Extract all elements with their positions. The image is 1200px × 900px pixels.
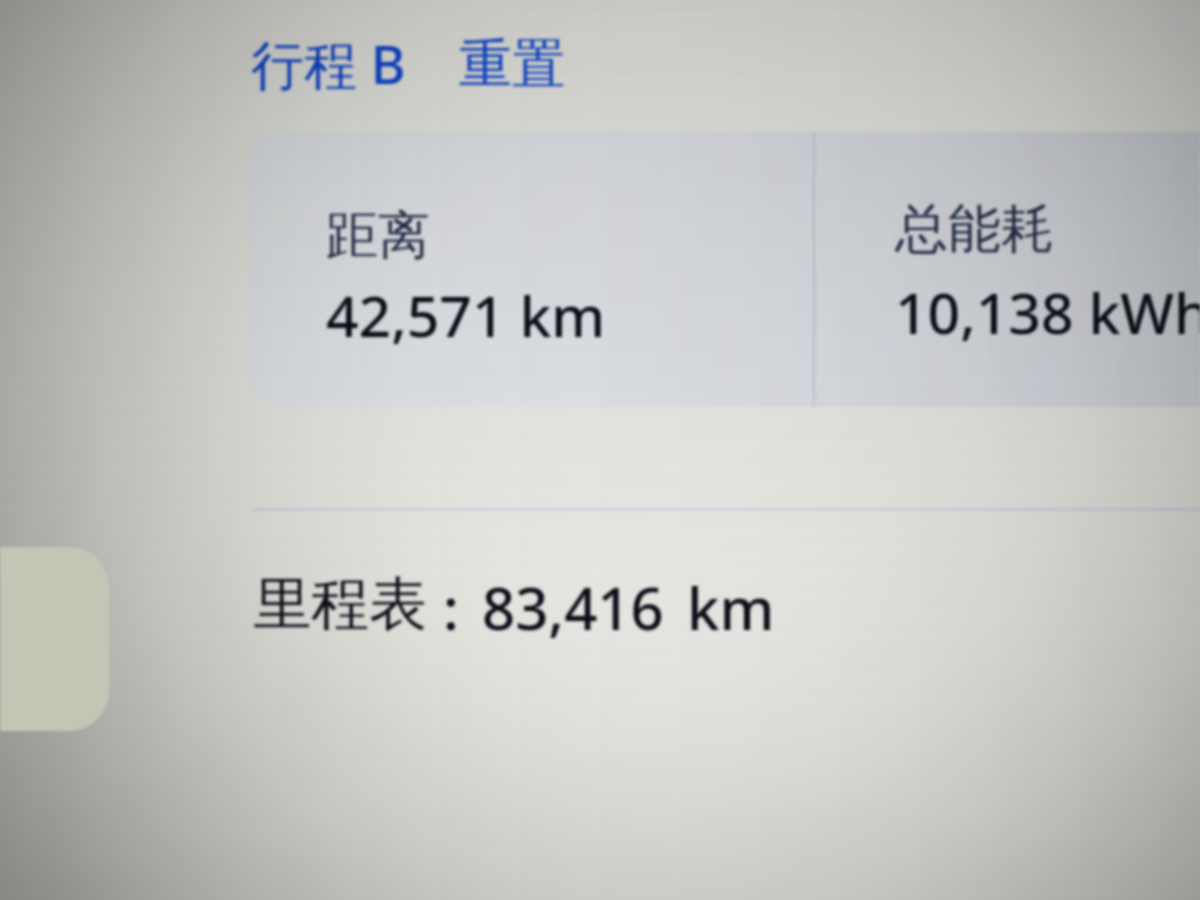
staticText: 总能耗 (895, 196, 1054, 263)
staticText: 重置 (459, 31, 565, 98)
staticText: : (443, 568, 459, 647)
staticText: 83,416 (482, 568, 664, 647)
staticText: 行程 B (251, 27, 406, 99)
staticText: 距离 (326, 203, 430, 269)
button[interactable]: Trip B (251, 27, 411, 99)
staticText: 10,138 kWh (895, 273, 1200, 351)
staticText: 里程表 (253, 568, 427, 641)
staticText: 42,571 km (326, 276, 606, 354)
button[interactable]: Reset (459, 31, 567, 99)
staticText: km (687, 568, 775, 647)
button[interactable]: 距离 (249, 132, 1200, 407)
